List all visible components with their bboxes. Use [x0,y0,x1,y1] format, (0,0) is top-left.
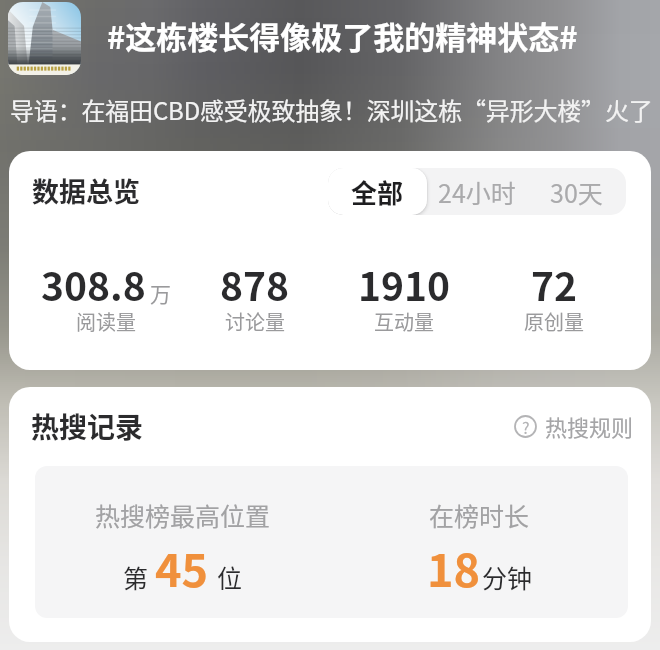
staticText: 讨论量 [225,307,285,336]
staticText: 45 [155,535,209,600]
staticText: 阅读量 [76,307,136,336]
staticText: 1910 [358,256,451,312]
staticText: 72 [531,256,578,312]
staticText: 数据总览 [32,171,140,210]
staticText: 热搜规则 [545,410,634,442]
other: 热搜规则说明 [514,415,537,438]
staticText: 第 [123,559,149,595]
staticText: 万 [150,278,171,308]
button[interactable]: 热搜榜最高位置 [35,466,331,618]
staticText: 分钟 [482,559,533,595]
staticText: 全部 [351,173,404,211]
staticText: 308.8 [41,256,146,312]
button[interactable]: 72 [479,256,629,341]
staticText: 30天 [550,174,603,210]
button[interactable]: 1910 [329,256,479,341]
button[interactable]: 30天 [527,168,626,215]
button[interactable]: 话题配图 [8,2,81,75]
button[interactable]: 308.8 [31,256,180,341]
staticText: 原创量 [524,307,584,336]
staticText: #这栋楼长得像极了我的精神状态# [107,13,578,58]
staticText: 在榜时长 [429,497,530,533]
staticText: 18 [427,535,481,600]
button[interactable]: 热搜规则说明 [514,410,634,442]
staticText: 导语：在福田CBD感受极致抽象！深圳这栋“异形大楼”火了 [10,92,653,127]
staticText: 878 [220,256,290,312]
staticText: 位 [217,559,243,595]
staticText: 互动量 [374,307,434,336]
button[interactable]: 24小时 [427,168,527,215]
staticText: 热搜榜最高位置 [95,497,271,533]
staticText: 热搜记录 [31,406,144,447]
button[interactable]: 全部 [328,168,427,215]
button[interactable]: 在榜时长 [331,466,628,618]
staticText: ? [522,415,530,438]
staticText: 24小时 [438,174,516,210]
button[interactable]: 878 [180,256,329,341]
